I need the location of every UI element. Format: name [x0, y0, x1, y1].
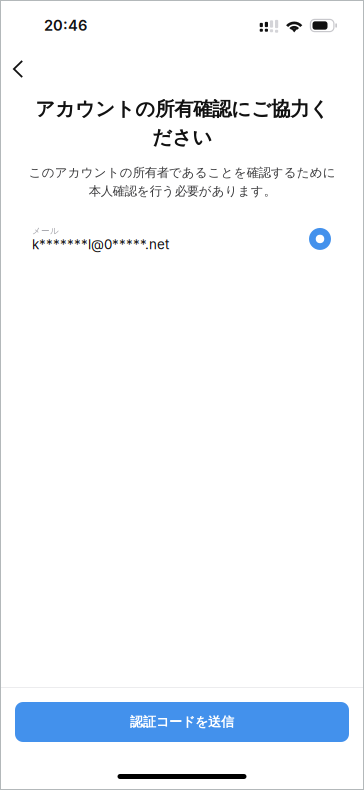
button[interactable]: Back: [1, 52, 35, 86]
staticText: 20:46: [44, 17, 87, 34]
staticText: メール: [32, 225, 59, 236]
button[interactable]: 認証コードを送信: [15, 702, 349, 742]
button[interactable]: メール: [0, 219, 364, 259]
staticText: このアカウントの所有者であることを確認するために本人確認を行う必要があります。: [28, 165, 335, 199]
staticText: 認証コードを送信: [130, 714, 234, 730]
staticText: アカウントの所有確認にご協力ください: [35, 97, 329, 150]
staticText: k*******l@0*****.net: [32, 236, 169, 252]
